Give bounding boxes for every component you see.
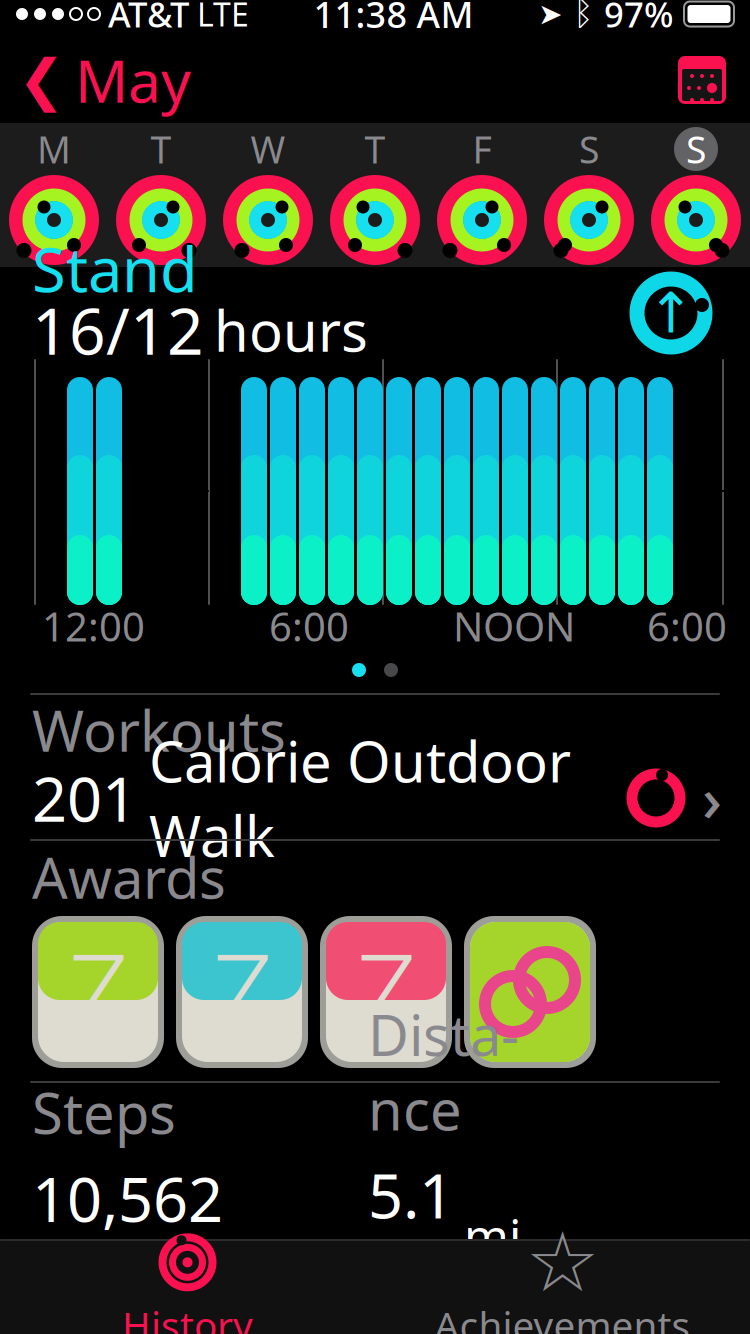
button[interactable]: Day rings <box>535 174 642 266</box>
staticText: Awards <box>32 840 226 914</box>
staticText: T <box>364 124 385 174</box>
staticText: 201 <box>32 757 137 839</box>
staticText: T <box>150 124 171 174</box>
staticText: NOON <box>453 599 575 652</box>
staticText: 6:00 <box>647 599 727 652</box>
staticText: M <box>37 124 71 174</box>
button[interactable]: Move award <box>316 913 456 1071</box>
staticText: ᛒ <box>573 0 594 31</box>
staticText: ❮ <box>18 48 65 112</box>
staticText: Calorie Outdoor Walk <box>149 724 571 872</box>
staticText: Stand <box>32 228 198 309</box>
staticText: S <box>686 124 706 174</box>
staticText: 12:00 <box>42 599 145 652</box>
staticText: Z <box>211 919 272 1061</box>
staticText: F <box>472 124 491 174</box>
staticText: AT&T <box>108 0 189 37</box>
button[interactable]: Day rings <box>107 174 214 266</box>
button[interactable]: ☆ <box>375 1242 750 1334</box>
staticText: › <box>702 757 722 839</box>
button[interactable]: Day rings <box>0 174 107 266</box>
staticText: Achievements <box>434 1299 690 1334</box>
button[interactable]: History <box>0 1242 375 1334</box>
button[interactable]: Day rings <box>428 174 535 266</box>
button[interactable]: Day rings <box>642 174 749 266</box>
staticText: 10,562 <box>32 1157 223 1239</box>
button[interactable]: Exercise award <box>28 913 168 1071</box>
staticText: Distance <box>368 997 519 1146</box>
staticText: History <box>122 1299 253 1334</box>
button[interactable]: 201 <box>0 761 750 835</box>
button[interactable]: ❮ <box>0 31 191 129</box>
staticText: ➤ <box>538 0 563 31</box>
staticText: 11:38 AM <box>313 0 473 38</box>
staticText: 16/12 <box>32 287 204 372</box>
staticText: May <box>75 41 191 119</box>
staticText: hours <box>214 293 368 367</box>
staticText: Steps <box>32 1075 176 1149</box>
staticText: 97% <box>604 0 674 37</box>
staticText: 5.16 <box>368 1154 454 1317</box>
staticText: S <box>579 124 599 174</box>
staticText: LTE <box>197 0 249 35</box>
button[interactable]: Double goal award <box>460 913 600 1071</box>
button[interactable]: Day rings <box>321 174 428 266</box>
staticText: Z <box>355 919 416 1061</box>
staticText: Workouts <box>32 693 286 767</box>
staticText: W <box>250 124 285 174</box>
button[interactable]: Stand award <box>172 913 312 1071</box>
button[interactable]: Day rings <box>214 174 321 266</box>
staticText: 6:00 <box>269 599 349 652</box>
button[interactable]: Calendar <box>678 46 750 114</box>
staticText: ☆ <box>525 1215 599 1309</box>
staticText: ↑ <box>647 281 694 345</box>
staticText: mi <box>464 1203 521 1267</box>
staticText: Z <box>67 919 128 1061</box>
